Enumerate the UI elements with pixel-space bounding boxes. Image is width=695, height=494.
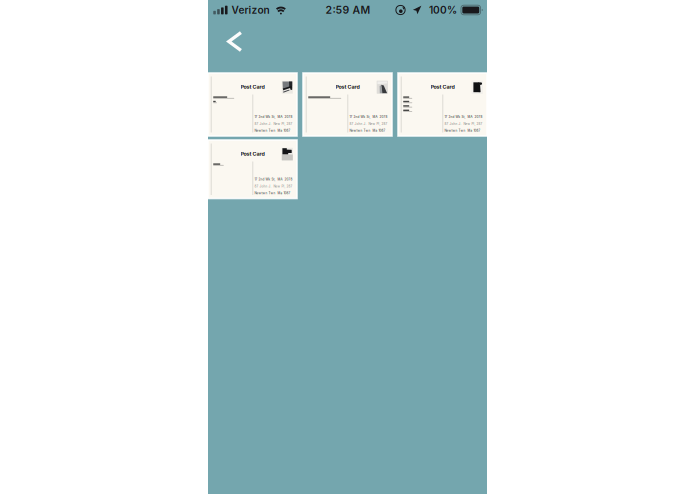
staticText: Newtwn Twn Ma 1087 [254,191,290,195]
staticText: Post Card [240,150,264,157]
staticText: 17 2nd Wk St, MA 2078 [254,177,292,181]
staticText: 100% [429,4,457,16]
staticText: 87 John J. New Pl, 287 [349,122,387,126]
staticText: 87 John J. New Pl, 287 [254,122,292,126]
button[interactable]: Post Card [208,73,297,136]
staticText: Post Card [430,83,454,90]
staticText: Post Card [240,83,264,90]
staticText: Newtwn Twn Ma 1087 [254,129,290,132]
button[interactable]: Post Card [398,73,487,136]
staticText: Verizon [231,4,269,16]
staticText: Newtwn Twn Ma 1087 [444,129,480,132]
staticText: 17 2nd Wk St, MA 2078 [349,115,387,119]
button[interactable]: Post Card [303,73,392,136]
staticText: 87 John J. New Pl, 287 [444,122,482,126]
button[interactable]: Back [208,20,257,63]
staticText: Post Card [335,83,359,90]
staticText: 87 John J. New Pl, 287 [254,184,292,188]
staticText: 17 2nd Wk St, MA 2078 [444,115,482,119]
staticText: Newtwn Twn Ma 1087 [349,129,385,132]
button[interactable]: Post Card [208,140,297,198]
staticText: 2:59 AM [325,4,370,16]
staticText: 17 2nd Wk St, MA 2078 [254,115,292,119]
